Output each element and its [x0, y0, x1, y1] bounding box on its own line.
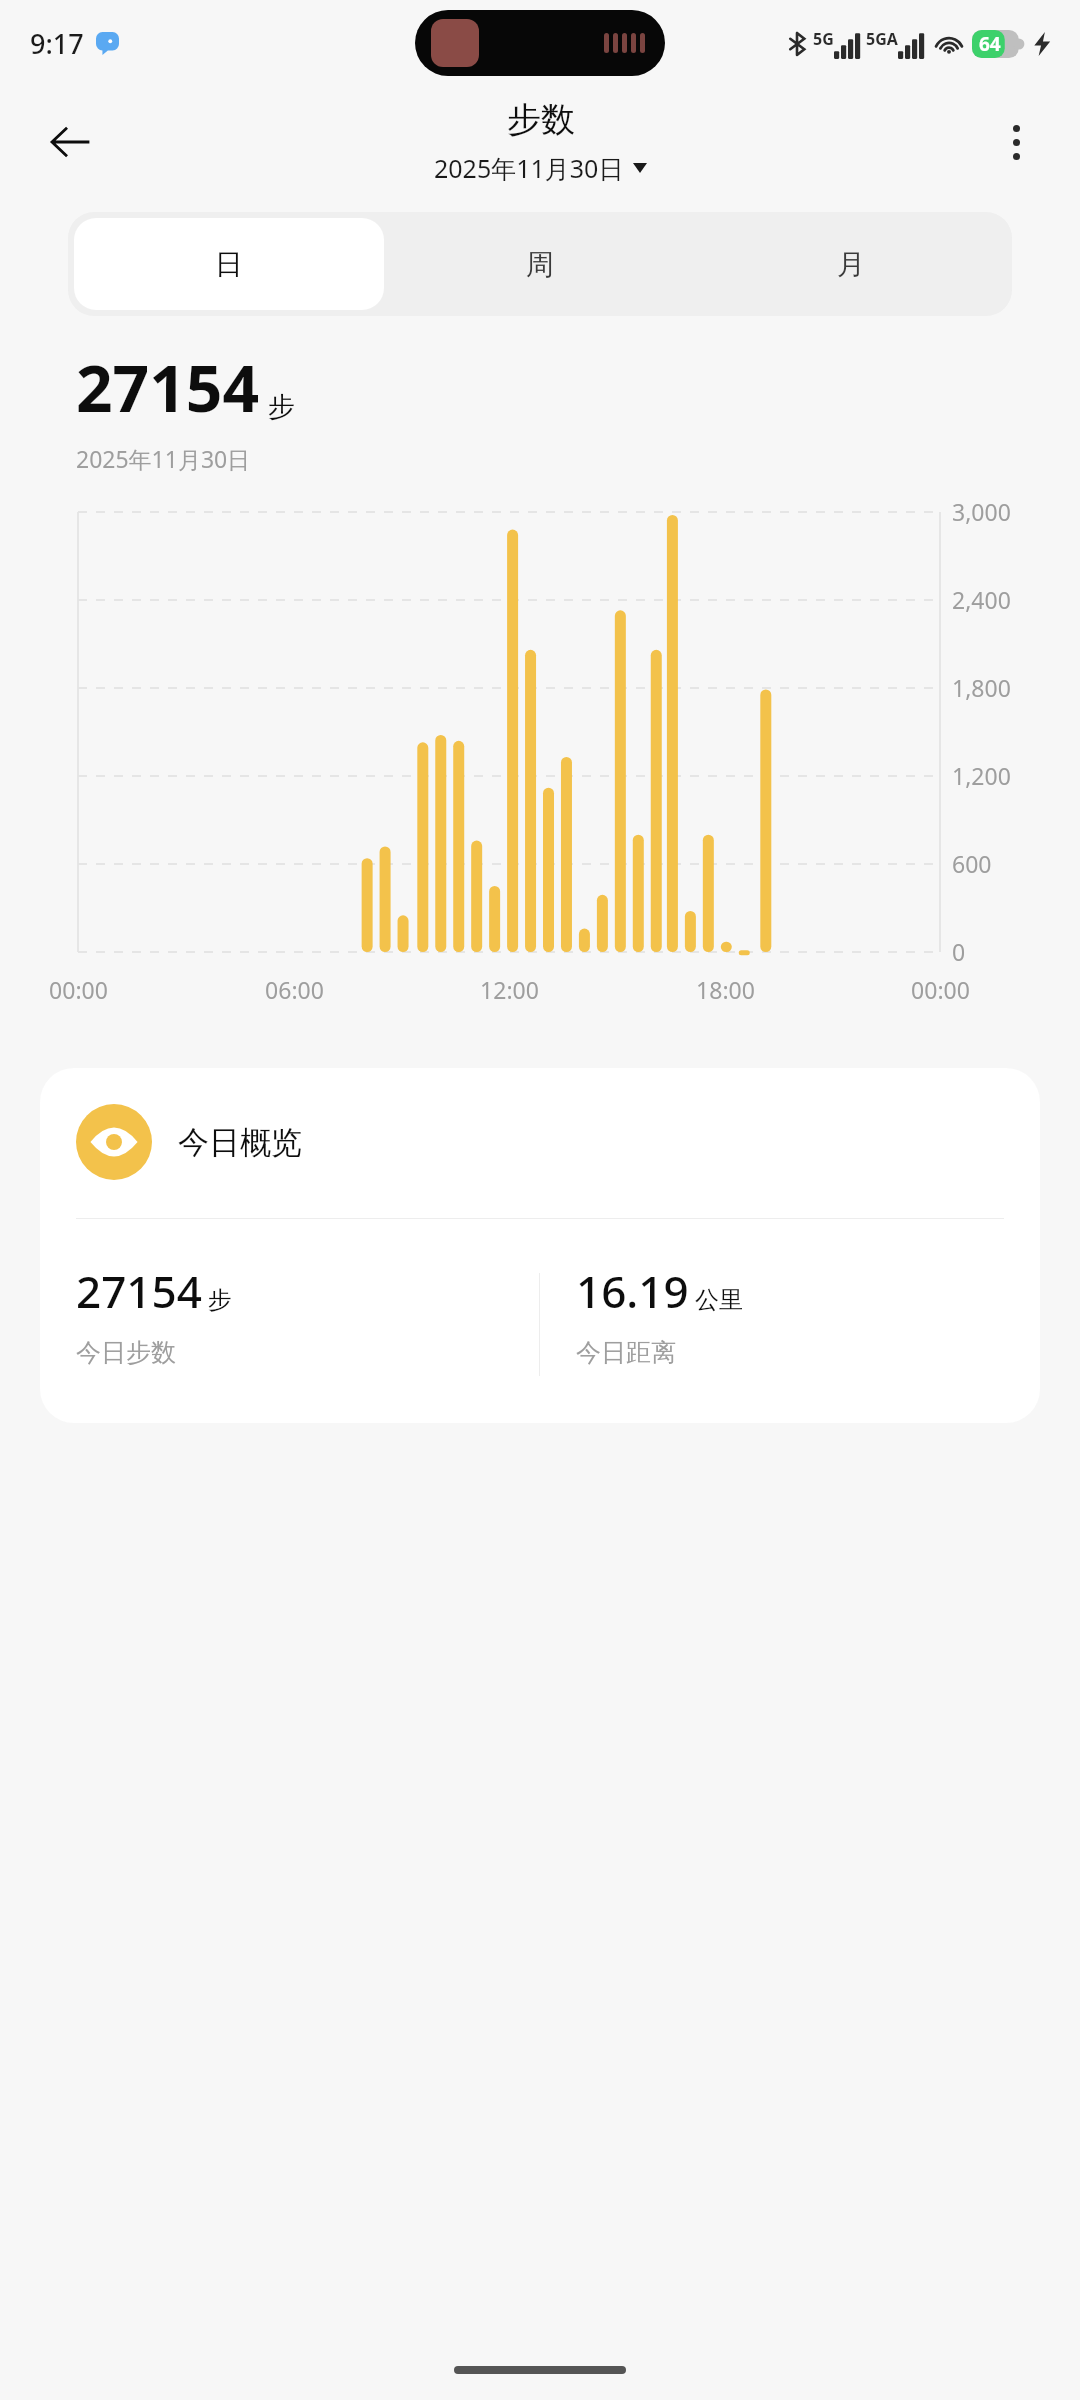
- staticText: 16.19: [576, 1261, 689, 1321]
- staticText: 1,800: [952, 672, 1011, 703]
- staticText: 12:00: [480, 974, 539, 1005]
- button[interactable]: 月: [695, 218, 1006, 310]
- button[interactable]: 今日概览: [40, 1068, 1040, 1423]
- staticText: 600: [952, 848, 992, 879]
- staticText: 3,000: [952, 496, 1011, 527]
- staticText: 周: [526, 247, 554, 282]
- staticText: 公里: [695, 1285, 743, 1315]
- button[interactable]: 周: [384, 218, 695, 310]
- button[interactable]: Back: [38, 110, 102, 174]
- button[interactable]: More options: [986, 112, 1046, 172]
- staticText: 日: [215, 247, 243, 282]
- staticText: 月: [837, 247, 865, 282]
- staticText: 2025年11月30日: [76, 443, 251, 474]
- staticText: 步: [208, 1285, 232, 1315]
- staticText: 00:00: [49, 974, 108, 1005]
- staticText: 今日概览: [178, 1123, 302, 1162]
- staticText: 06:00: [265, 974, 324, 1005]
- staticText: 27154: [76, 344, 260, 431]
- staticText: 1,200: [952, 760, 1011, 791]
- button[interactable]: 2025年11月30日: [430, 149, 651, 187]
- staticText: 2,400: [952, 584, 1011, 615]
- staticText: 18:00: [696, 974, 755, 1005]
- button[interactable]: 日: [74, 218, 384, 310]
- staticText: 今日距离: [576, 1337, 676, 1368]
- staticText: 0: [952, 936, 966, 967]
- staticText: 27154: [76, 1261, 202, 1321]
- staticText: 步: [268, 390, 295, 424]
- staticText: 2025年11月30日: [434, 151, 624, 185]
- staticText: 9:17: [30, 25, 84, 62]
- staticText: 5G: [813, 28, 834, 50]
- staticText: 00:00: [911, 974, 970, 1005]
- staticText: 64: [979, 31, 1001, 57]
- staticText: 步数: [507, 98, 575, 141]
- staticText: 5GA: [866, 28, 898, 50]
- staticText: 今日步数: [76, 1337, 176, 1368]
